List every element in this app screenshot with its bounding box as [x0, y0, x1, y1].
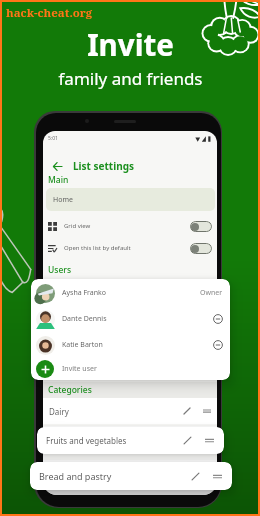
button[interactable]: Dairy [49, 398, 211, 424]
button[interactable]: Katie Barton [36, 332, 223, 358]
staticText: family and friends [58, 67, 203, 90]
staticText: Dairy [49, 406, 69, 417]
other: Remove user [213, 314, 223, 324]
staticText: Owner [200, 288, 223, 298]
staticText: Categories [48, 384, 92, 396]
button[interactable]: Open this list by default [48, 238, 212, 258]
button[interactable]: Bread and pastry [49, 460, 211, 486]
staticText: Invite [87, 24, 174, 64]
staticText: Main [48, 174, 69, 186]
button[interactable]: Fruits and vegetables [49, 426, 211, 452]
staticText: Open this list by default [64, 244, 131, 252]
button[interactable]: Fruits and vegetables [46, 427, 214, 454]
other: Reorder [203, 407, 211, 415]
other: Remove user [213, 340, 223, 350]
button[interactable]: Grid view [48, 216, 212, 236]
staticText: Katie Barton [62, 340, 103, 350]
button[interactable]: Bread and pastry [39, 462, 222, 490]
staticText: Bread and pastry [49, 468, 114, 479]
staticText: Users [48, 264, 72, 276]
staticText: hack-cheat.org [6, 5, 93, 21]
other: Edit [183, 435, 191, 443]
other: Edit [183, 407, 191, 415]
staticText: 5:01 [48, 135, 58, 142]
button[interactable]: Home [46, 188, 215, 211]
staticText: Fruits and vegetables [49, 434, 130, 445]
staticText: Aysha Franko [62, 288, 107, 298]
button[interactable]: Aysha Franko [36, 280, 223, 306]
other: Reorder [203, 435, 211, 443]
button[interactable]: Invite user [36, 358, 230, 380]
other: Reorder [213, 472, 222, 481]
other: Reorder [205, 436, 214, 445]
staticText: Invite user [62, 364, 97, 374]
staticText: Dante Dennis [62, 314, 107, 324]
other: Edit [183, 436, 192, 445]
staticText: List settings [73, 159, 135, 173]
staticText: Home [53, 195, 73, 205]
staticText: Grid view [64, 222, 91, 230]
other: Edit [191, 472, 200, 481]
staticText: Fruits and vegetables [46, 435, 127, 446]
staticText: Bread and pastry [39, 470, 112, 482]
button[interactable]: Dante Dennis [36, 306, 223, 332]
button[interactable]: Back [49, 158, 66, 175]
